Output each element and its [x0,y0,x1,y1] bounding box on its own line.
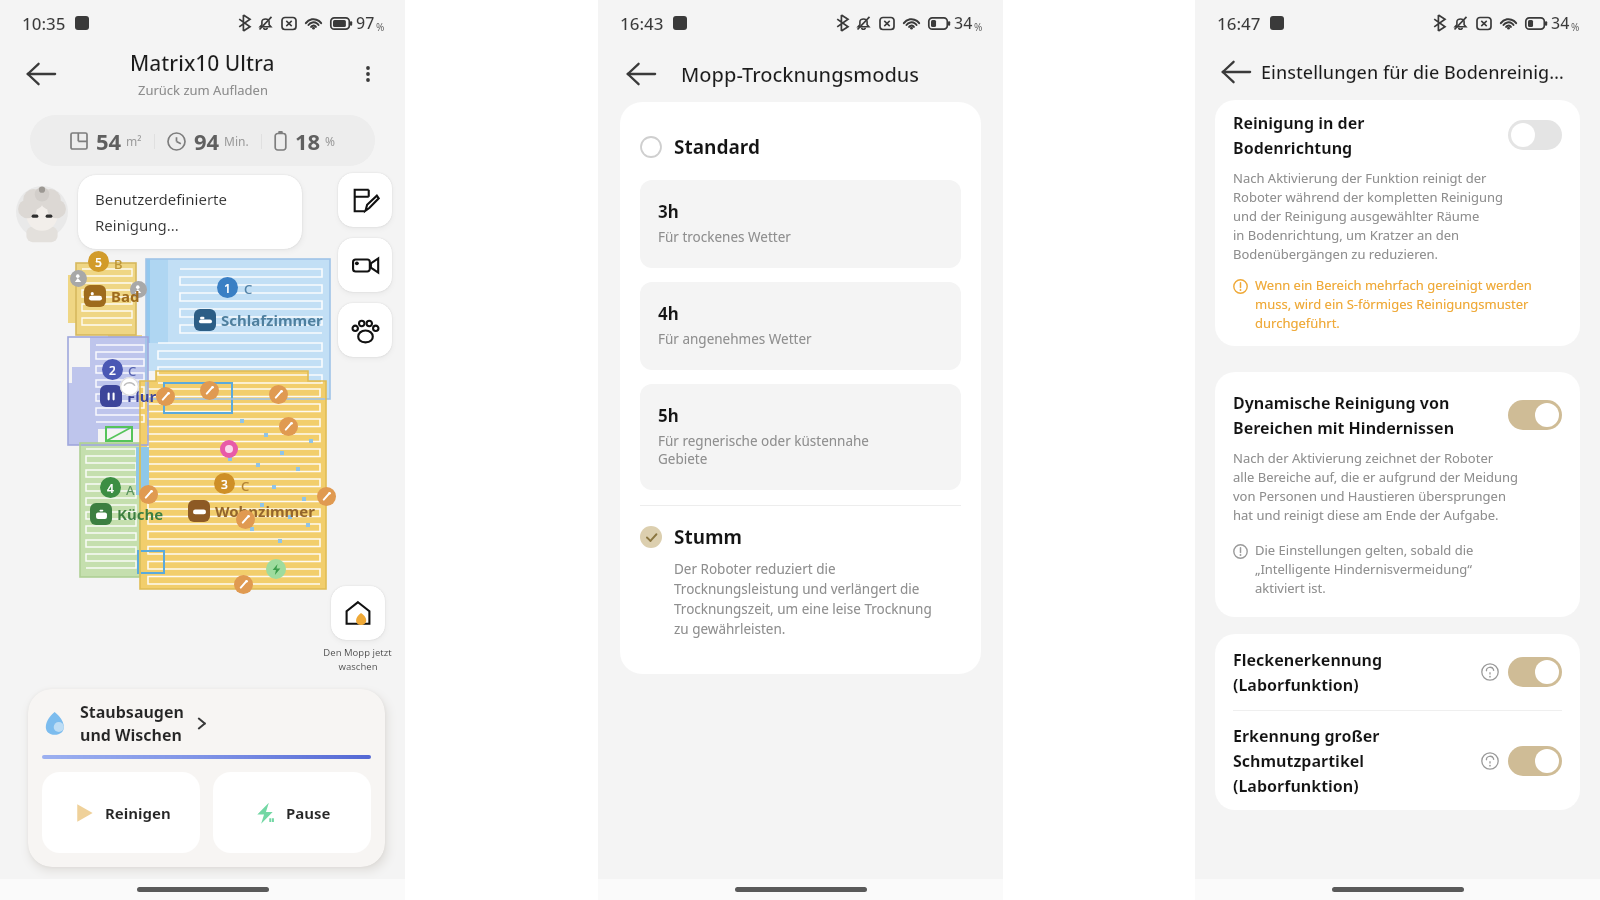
staticText: 2 [109,362,116,378]
staticText: 3 [221,476,228,492]
staticText: Wohnzimmer [215,501,315,521]
staticText: 34 [1551,12,1570,34]
staticText: 5 [95,254,102,270]
staticText: 97 [356,12,375,34]
staticText: Schlafzimmer [221,310,323,330]
staticText: Für angenehmes Wetter [658,330,812,348]
button[interactable]: Back [26,59,56,89]
button[interactable]: Toggle off [1508,120,1562,150]
staticText: C [241,477,250,495]
button[interactable]: Stumm [640,524,961,550]
staticText: 94 [194,126,220,156]
staticText: % [1571,20,1580,34]
staticText: Erkennung großer Schmutzpartikel (Laborf… [1233,725,1481,796]
staticText: A [126,481,135,499]
button[interactable]: Wash mop now [331,586,385,640]
staticText: 4 [107,480,114,496]
staticText: und Wischen [80,724,182,746]
button[interactable]: Standard [640,134,961,160]
staticText: Matrix10 Ultra [130,49,275,78]
staticText: 1 [224,280,231,296]
staticText: 5h [658,404,679,427]
staticText: Min. [224,133,249,149]
staticText: Staubsaugen [80,701,184,723]
staticText: Stumm [674,524,743,550]
staticText: Bad [111,286,140,306]
staticText: Pause [286,803,331,823]
staticText: C [128,362,137,380]
button[interactable]: Pet mode [338,303,392,357]
staticText: Reinigen [105,803,171,823]
staticText: Fleckenerkennung (Laborfunktion) [1233,649,1481,695]
staticText: % [974,20,983,34]
button[interactable]: Toggle on [1508,746,1562,776]
button[interactable]: Camera [338,238,392,292]
staticText: Küche [117,504,164,524]
staticText: Der Roboter reduziert die Trocknungsleis… [674,560,932,638]
staticText: Standard [674,134,760,160]
staticText: Einstellungen für die Bodenreinig… [1261,60,1564,85]
button[interactable]: 5h [640,384,961,490]
staticText: Für regnerische oder küstennahe Gebiete [658,432,869,468]
button[interactable]: Toggle on [1508,657,1562,687]
staticText: Benutzerdefinierte [95,189,227,209]
button[interactable]: Staubsaugen [42,701,209,746]
button[interactable]: Back [626,59,656,89]
button[interactable]: Edit map [338,173,392,227]
staticText: Zurück zum Aufladen [138,81,268,99]
staticText: Reinigung... [95,215,179,235]
staticText: Die Einstellungen gelten, sobald die „In… [1255,541,1474,597]
button[interactable]: Pause [213,772,371,853]
staticText: 18 [295,126,321,156]
button[interactable]: Reinigen [42,772,200,853]
staticText: 3h [658,200,679,223]
staticText: Den Mopp jetzt [323,646,392,659]
staticText: % [325,133,335,149]
staticText: Nach der Aktivierung zeichnet der Robote… [1233,449,1519,524]
staticText: 10:35 [22,12,66,35]
button[interactable]: Help [1481,752,1499,770]
staticText: 4h [658,302,679,325]
button[interactable]: 3h [640,180,961,268]
button[interactable]: 4h [640,282,961,370]
button[interactable]: More options [355,61,381,87]
staticText: Reinigung in der Bodenrichtung [1233,112,1508,158]
staticText: 16:43 [620,12,664,35]
staticText: Dynamische Reinigung von Bereichen mit H… [1233,392,1508,438]
staticText: Mopp-Trocknungsmodus [681,61,920,88]
staticText: Nach Aktivierung der Funktion reinigt de… [1233,169,1504,263]
staticText: C [244,280,253,298]
button[interactable]: Toggle on [1508,400,1562,430]
button[interactable]: Fleckenerkennung (Laborfunktion) [1233,634,1562,710]
staticText: Für trockenes Wetter [658,228,791,246]
staticText: waschen [338,660,378,673]
button[interactable]: Help [1481,663,1499,681]
staticText: 16:47 [1217,12,1261,35]
staticText: 34 [954,12,973,34]
staticText: 54 [96,126,122,156]
staticText: Flur [127,386,157,406]
button[interactable]: Back [1221,57,1251,87]
staticText: m² [126,133,142,149]
staticText: Wenn ein Bereich mehrfach gereinigt werd… [1255,276,1532,332]
button[interactable]: Erkennung großer Schmutzpartikel (Laborf… [1233,711,1562,810]
staticText: B [114,255,123,273]
staticText: % [376,20,385,34]
